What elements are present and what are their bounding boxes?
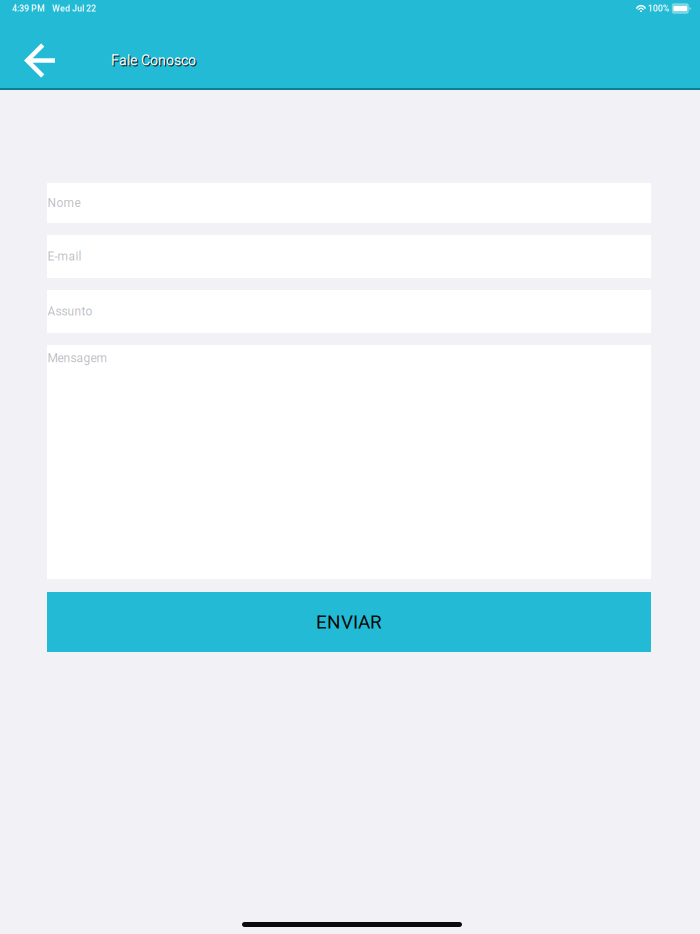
button[interactable]: Nome xyxy=(47,183,651,223)
staticText: Fale Conosco xyxy=(111,52,196,69)
staticText: Assunto xyxy=(48,304,93,319)
button[interactable]: ENVIAR xyxy=(47,592,651,652)
button[interactable]: Assunto xyxy=(47,290,651,333)
staticText: 4:39 PM xyxy=(12,3,45,14)
staticText: Mensagem xyxy=(48,351,108,365)
staticText: Wed Jul 22 xyxy=(52,3,96,14)
staticText: Fale Conosco xyxy=(112,53,197,70)
staticText: Nome xyxy=(48,196,81,210)
staticText: E-mail xyxy=(48,249,82,264)
staticText: 100% xyxy=(648,3,669,14)
button[interactable]: Back xyxy=(12,33,67,88)
staticText: ENVIAR xyxy=(316,611,382,633)
